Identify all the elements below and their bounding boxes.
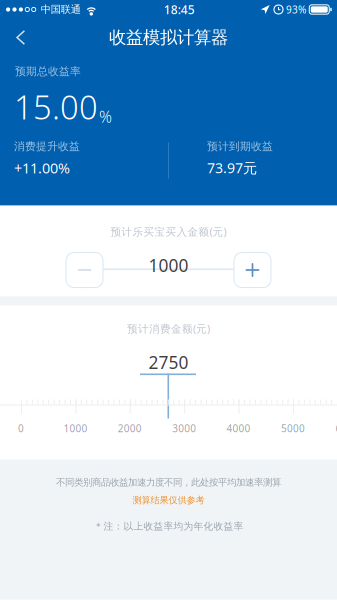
staticText: 消费提升收益 xyxy=(14,139,80,153)
staticText: 6000 xyxy=(335,421,337,435)
button[interactable]: Decrease amount xyxy=(66,252,103,287)
staticText: 5000 xyxy=(281,421,305,435)
staticText: 预计到期收益 xyxy=(207,139,273,153)
staticText: 3000 xyxy=(172,421,196,435)
staticText: 预计消费金额(元) xyxy=(127,321,210,336)
button[interactable]: Increase amount xyxy=(234,252,271,287)
staticText: ＊注：以上收益率均为年化收益率 xyxy=(93,520,243,532)
staticText: 中国联通 xyxy=(41,3,81,16)
staticText: 预计乐买宝买入金额(元) xyxy=(110,224,226,239)
staticText: 测算结果仅供参考 xyxy=(132,494,204,506)
staticText: 预期总收益率 xyxy=(15,64,81,78)
staticText: +11.00% xyxy=(14,158,70,178)
staticText: 15.00 xyxy=(14,84,98,129)
staticText: 2750 xyxy=(148,350,188,374)
staticText: 93% xyxy=(286,3,306,16)
staticText: 18:45 xyxy=(164,1,195,18)
staticText: 1000 xyxy=(63,421,87,435)
staticText: 不同类别商品收益加速力度不同，此处按平均加速率测算 xyxy=(56,476,281,488)
staticText: 73.97元 xyxy=(207,158,257,177)
staticText: 收益模拟计算器 xyxy=(109,27,228,48)
staticText: 0 xyxy=(18,421,24,435)
staticText: 4000 xyxy=(227,421,251,435)
staticText: 2000 xyxy=(118,421,142,435)
button[interactable]: Back xyxy=(0,20,41,55)
staticText: % xyxy=(99,106,112,127)
staticText: 1000 xyxy=(148,253,188,277)
